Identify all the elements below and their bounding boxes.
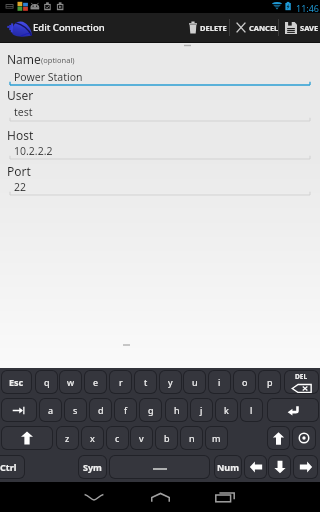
button[interactable]: m: [206, 427, 227, 449]
staticText: x: [90, 432, 95, 444]
staticText: u: [192, 376, 198, 388]
staticText: SAVE: [300, 23, 319, 33]
staticText: Sym: [83, 461, 102, 473]
button[interactable]: Recent apps: [195, 482, 255, 512]
button[interactable]: DELETE: [185, 13, 228, 42]
staticText: 10.2.2.2: [14, 144, 53, 158]
button[interactable]: g: [140, 399, 161, 421]
button[interactable]: u: [184, 371, 205, 393]
button[interactable]: Ctrl: [0, 456, 24, 478]
button[interactable]: c: [107, 427, 128, 449]
button[interactable]: y: [160, 371, 181, 393]
button[interactable]: Port: [0, 163, 320, 177]
staticText: CANCEL: [249, 23, 279, 33]
staticText: Port: [7, 163, 31, 177]
staticText: test: [14, 105, 33, 119]
staticText: r: [119, 376, 123, 388]
staticText: Num: [217, 461, 239, 473]
staticText: p: [267, 376, 273, 388]
button[interactable]: Shift: [2, 427, 52, 449]
button[interactable]: k: [216, 399, 237, 421]
staticText: s: [73, 404, 78, 416]
staticText: k: [224, 404, 229, 416]
button[interactable]: l: [241, 399, 262, 421]
button[interactable]: s: [65, 399, 86, 421]
staticText: Ctrl: [0, 461, 17, 473]
staticText: h: [174, 404, 180, 416]
staticText: 22: [14, 180, 27, 194]
button[interactable]: Delete: [285, 371, 318, 393]
button[interactable]: q: [36, 371, 57, 393]
staticText: l: [250, 404, 253, 416]
button[interactable]: Esc: [2, 371, 31, 393]
staticText: n: [189, 432, 195, 444]
button[interactable]: d: [90, 399, 111, 421]
staticText: b: [164, 432, 170, 444]
button[interactable]: Host: [0, 127, 320, 141]
button[interactable]: Name: [0, 51, 320, 65]
button[interactable]: b: [156, 427, 177, 449]
staticText: i: [218, 376, 221, 388]
button[interactable]: Sym: [79, 456, 106, 478]
staticText: (optional): [41, 55, 75, 65]
button[interactable]: SAVE: [281, 13, 320, 42]
staticText: Host: [7, 127, 34, 141]
button[interactable]: Space: [110, 456, 209, 478]
button[interactable]: x: [82, 427, 103, 449]
button[interactable]: r: [110, 371, 131, 393]
button[interactable]: Hide keyboard: [64, 482, 124, 512]
button[interactable]: t: [135, 371, 156, 393]
staticText: t: [144, 376, 148, 388]
button[interactable]: e: [85, 371, 106, 393]
staticText: DELETE: [200, 23, 227, 33]
button[interactable]: h: [166, 399, 187, 421]
staticText: v: [139, 432, 144, 444]
button[interactable]: Right: [294, 456, 317, 478]
staticText: g: [148, 404, 154, 416]
staticText: o: [242, 376, 248, 388]
button[interactable]: Shift up: [268, 427, 289, 449]
staticText: Esc: [9, 376, 24, 388]
button[interactable]: i: [209, 371, 230, 393]
button[interactable]: User: [0, 87, 320, 101]
staticText: d: [98, 404, 104, 416]
staticText: q: [44, 376, 50, 388]
button[interactable]: CANCEL: [232, 13, 277, 42]
button[interactable]: p: [259, 371, 280, 393]
button[interactable]: a: [40, 399, 61, 421]
staticText: a: [48, 404, 54, 416]
button[interactable]: Left: [245, 456, 266, 478]
button[interactable]: z: [57, 427, 78, 449]
staticText: User: [7, 87, 34, 101]
button[interactable]: f: [115, 399, 136, 421]
button[interactable]: o: [234, 371, 255, 393]
button[interactable]: Settings: [293, 427, 315, 449]
staticText: Name: [7, 51, 41, 65]
button[interactable]: v: [131, 427, 152, 449]
button[interactable]: Home: [130, 482, 190, 512]
button[interactable]: Enter: [268, 399, 318, 421]
button[interactable]: w: [60, 371, 81, 393]
staticText: e: [93, 376, 99, 388]
staticText: c: [115, 432, 120, 444]
button[interactable]: j: [191, 399, 212, 421]
staticText: y: [168, 376, 173, 388]
staticText: m: [212, 432, 221, 444]
staticText: f: [124, 404, 128, 416]
button[interactable]: Tab: [2, 399, 36, 421]
staticText: DEL: [295, 372, 308, 381]
staticText: w: [67, 376, 75, 388]
button[interactable]: Down: [269, 456, 290, 478]
button[interactable]: Num: [215, 456, 241, 478]
staticText: Edit Connection: [33, 21, 105, 34]
staticText: Power Station: [14, 70, 83, 84]
staticText: z: [65, 432, 70, 444]
staticText: j: [200, 404, 203, 416]
button[interactable]: n: [181, 427, 202, 449]
staticText: 11:46: [296, 2, 320, 14]
